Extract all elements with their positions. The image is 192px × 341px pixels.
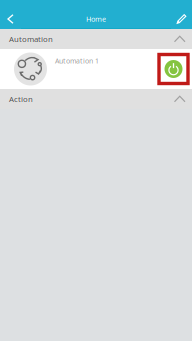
- button[interactable]: Edit: [171, 9, 192, 29]
- button[interactable]: Back: [0, 9, 21, 29]
- button[interactable]: Automation: [0, 29, 192, 49]
- staticText: Home: [86, 14, 106, 24]
- staticText: Automation 1: [55, 56, 99, 65]
- button[interactable]: Toggle automation: [161, 57, 185, 81]
- button[interactable]: Automation 1: [0, 49, 192, 89]
- staticText: Automation: [9, 34, 53, 44]
- button[interactable]: Action: [0, 89, 192, 109]
- staticText: Action: [9, 94, 33, 104]
